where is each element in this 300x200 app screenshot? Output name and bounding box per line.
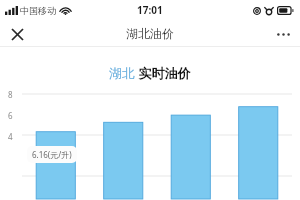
staticText: 中国移动 [20, 5, 56, 16]
staticText: 4 [8, 131, 13, 141]
button[interactable]: 6.16(元/升) [32, 149, 72, 160]
staticText: 6.16(元/升) [32, 149, 72, 160]
staticText: 湖北 实时油价 [109, 64, 191, 82]
staticText: 6 [8, 110, 13, 120]
staticText: 8 [8, 89, 13, 99]
staticText: 湖北油价 [126, 26, 174, 41]
staticText: 17:01 [137, 3, 163, 17]
button[interactable]: More options [271, 22, 295, 46]
button[interactable]: Close [5, 22, 29, 46]
